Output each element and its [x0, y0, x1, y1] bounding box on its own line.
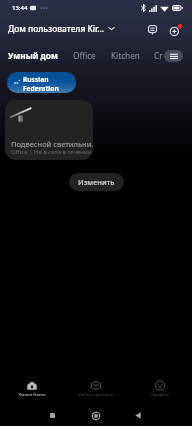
staticText: Cr [154, 50, 163, 61]
staticText: Russian [23, 75, 49, 84]
button[interactable]: Messages [142, 20, 162, 39]
staticText: Умный дом [8, 50, 58, 61]
staticText: Профиль [150, 391, 170, 397]
button[interactable]: Умный дом [7, 48, 59, 63]
staticText: Умные сценарии [78, 391, 114, 397]
staticText: Federation [23, 84, 59, 93]
button[interactable]: Xiaomi Home [0, 378, 64, 404]
button[interactable]: Office [72, 48, 97, 63]
button[interactable]: Дом пользователя Kir... [6, 21, 117, 36]
button[interactable]: Профиль [128, 378, 192, 404]
button[interactable]: Add device [165, 20, 186, 39]
staticText: 13:44 [12, 4, 28, 12]
button[interactable]: Recents [41, 407, 64, 424]
button[interactable]: Back [126, 407, 149, 424]
staticText: Kitchen [111, 50, 140, 61]
staticText: Подвесной светильни... [11, 139, 93, 149]
button[interactable]: Изменить [69, 173, 124, 191]
button[interactable]: Home [84, 407, 107, 424]
button[interactable]: Умные сценарии [64, 378, 128, 404]
button[interactable]: Russian [7, 72, 76, 93]
staticText: Дом пользователя Kir... [8, 23, 105, 34]
button[interactable]: Switch list view [164, 50, 183, 62]
staticText: Office | Не в сети в течение... [11, 148, 93, 156]
button[interactable]: Cr [153, 48, 164, 63]
button[interactable]: Kitchen [110, 48, 141, 63]
staticText: Xiaomi Home [18, 391, 46, 397]
staticText: Office [73, 50, 96, 61]
staticText: Изменить [78, 177, 115, 187]
button[interactable]: Подвесной светильни... [5, 100, 93, 160]
